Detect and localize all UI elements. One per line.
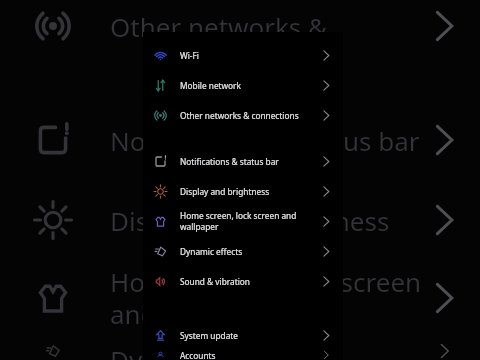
button[interactable]: Notifications & status bar (143, 146, 343, 176)
button[interactable]: Sound & vibration (143, 266, 343, 296)
button[interactable]: System update (143, 320, 343, 350)
staticText: Wi-Fi (180, 50, 320, 61)
staticText: Notifications & status bar (110, 123, 426, 158)
staticText: System update (180, 330, 320, 341)
staticText: Home screen, lock screen and wallpaper (110, 264, 426, 332)
staticText: Other networks & connections (180, 110, 320, 121)
staticText: Display and brightness (110, 203, 426, 238)
staticText: Notifications & status bar (180, 156, 320, 167)
staticText: Display and brightness (180, 186, 320, 197)
staticText: Home screen, lock screen and wallpaper (180, 210, 320, 232)
button[interactable]: Mobile network (143, 70, 343, 100)
staticText: Dynamic effects (180, 246, 320, 257)
button[interactable]: Wi-Fi (143, 40, 343, 70)
button[interactable]: Accounts (143, 350, 343, 360)
staticText: Accounts (180, 350, 320, 360)
staticText: Mobile network (180, 80, 320, 91)
button[interactable]: Home screen, lock screen and wallpaper (143, 206, 343, 236)
staticText: Other networks & connections (110, 9, 426, 44)
button[interactable]: Display and brightness (143, 176, 343, 206)
button[interactable]: Dynamic effects (143, 236, 343, 266)
button[interactable]: Other networks & connections (143, 100, 343, 130)
staticText: Sound & vibration (180, 276, 320, 287)
staticText: Dynamic effects (110, 342, 426, 360)
